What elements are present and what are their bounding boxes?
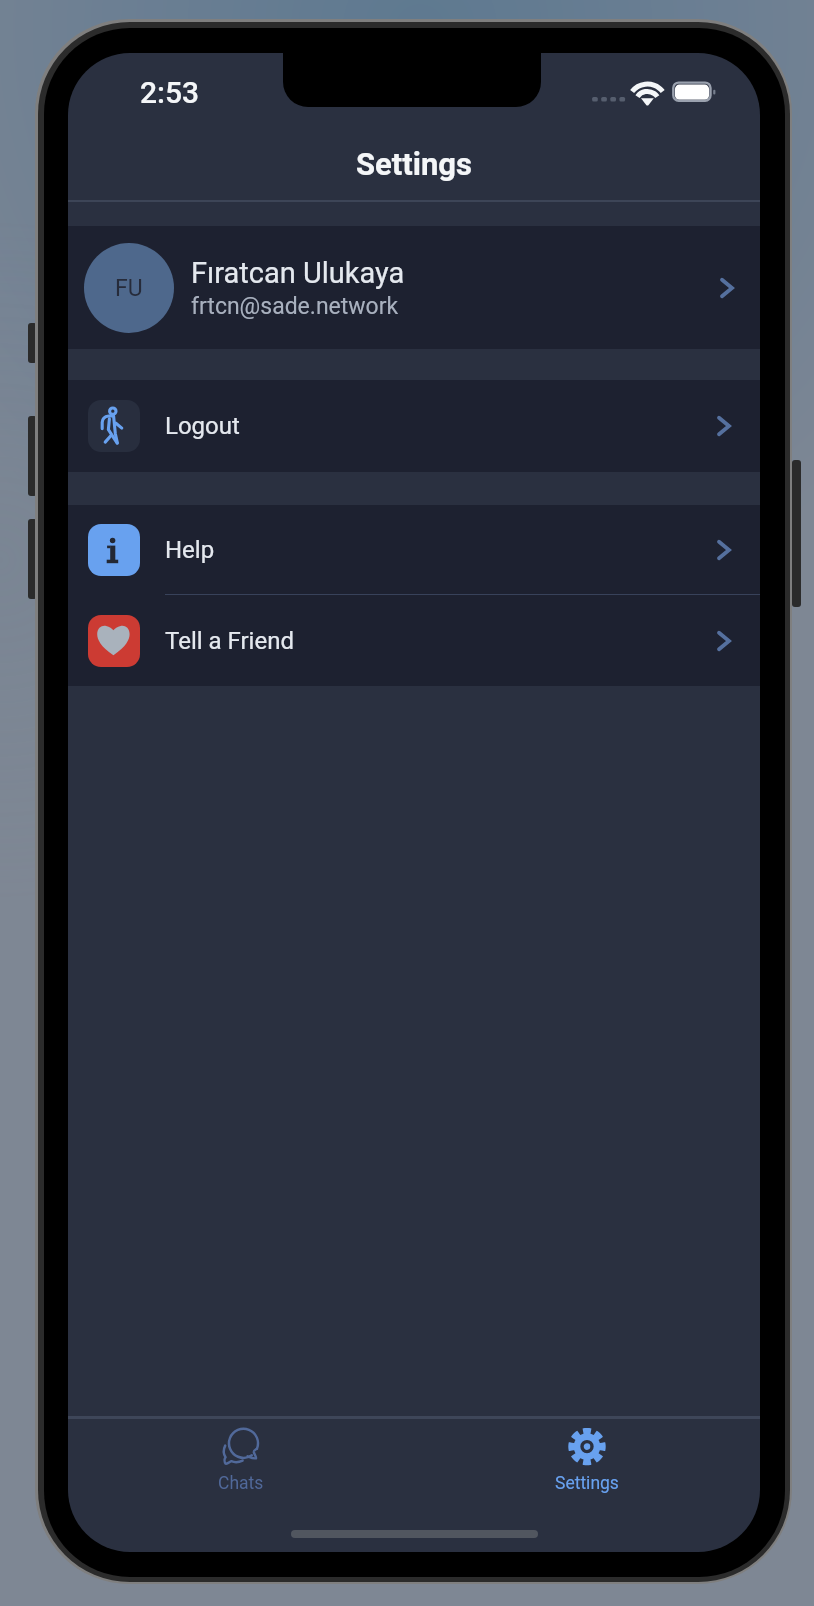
staticText: Chats bbox=[218, 1473, 264, 1494]
staticText: Logout bbox=[165, 412, 711, 440]
staticText: Settings bbox=[356, 146, 473, 182]
staticText: 2:53 bbox=[140, 75, 200, 110]
button[interactable]: Logout bbox=[68, 380, 760, 472]
other: Chats bbox=[222, 1427, 260, 1465]
button[interactable]: FU bbox=[68, 226, 760, 349]
button[interactable]: Chats bbox=[68, 1419, 414, 1551]
staticText: Settings bbox=[555, 1473, 619, 1494]
button[interactable]: Help bbox=[68, 505, 760, 595]
staticText: Fıratcan Ulukaya bbox=[191, 256, 405, 290]
staticText: Tell a Friend bbox=[165, 627, 711, 655]
staticText: frtcn@sade.network bbox=[191, 293, 399, 320]
other: Settings bbox=[568, 1427, 606, 1465]
staticText: Help bbox=[165, 536, 711, 564]
button[interactable]: Tell a Friend bbox=[68, 595, 760, 686]
button[interactable]: Settings bbox=[414, 1419, 760, 1551]
staticText: FU bbox=[115, 275, 143, 302]
